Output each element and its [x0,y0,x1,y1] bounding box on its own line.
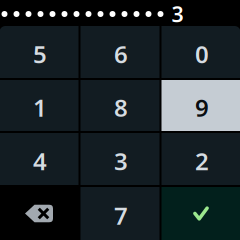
button[interactable]: Confirm [161,187,240,240]
button[interactable]: 7 [80,187,159,240]
staticText: 3 [114,145,128,177]
button[interactable]: 6 [80,26,159,78]
staticText: 0 [195,38,209,70]
staticText: 3 [171,0,183,28]
staticText: 7 [114,200,128,231]
staticText: 4 [33,145,47,177]
button[interactable]: 1 [0,80,78,131]
button[interactable]: 5 [0,26,78,78]
staticText: 8 [114,92,128,123]
button[interactable]: Delete [0,187,78,240]
button[interactable]: 0 [161,26,240,78]
staticText: 5 [33,38,47,70]
button[interactable]: 2 [161,133,240,185]
staticText: 2 [195,145,209,177]
staticText: 1 [33,92,47,123]
button[interactable]: 9 [161,80,240,131]
button[interactable]: 3 [80,133,159,185]
button[interactable]: 8 [80,80,159,131]
staticText: 6 [114,38,128,70]
staticText: 9 [195,92,209,123]
button[interactable]: 4 [0,133,78,185]
